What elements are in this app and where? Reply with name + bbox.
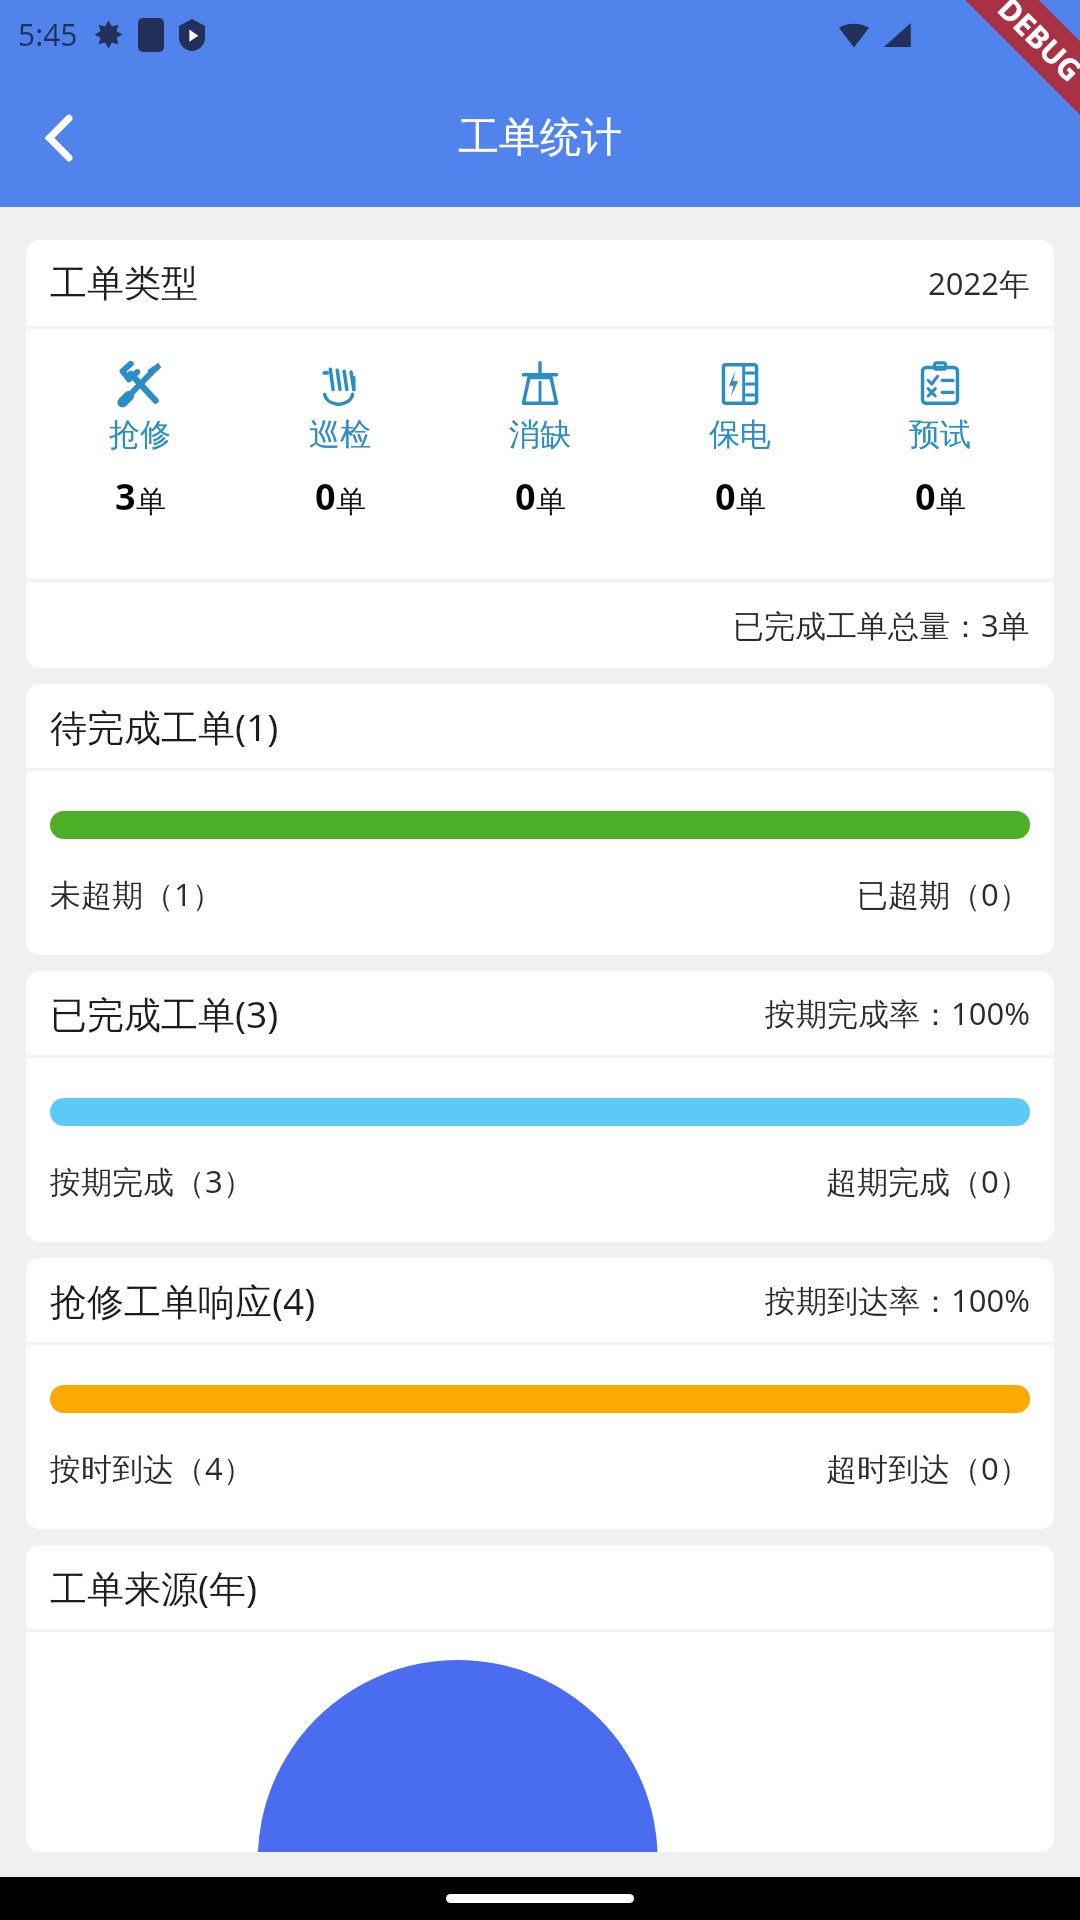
staticText: 0: [515, 472, 536, 521]
staticText: 0: [915, 472, 936, 521]
staticText: 超时到达（0）: [826, 1447, 1030, 1489]
staticText: 3: [115, 472, 136, 521]
staticText: 保电: [709, 415, 771, 454]
staticText: 已完成工单总量：3单: [733, 604, 1030, 646]
button[interactable]: 待完成工单(1): [26, 684, 1054, 955]
button[interactable]: 已完成工单(3): [26, 971, 1054, 1242]
button[interactable]: 工单类型: [26, 240, 1054, 668]
staticText: 待完成工单(1): [50, 701, 279, 752]
staticText: 按期完成（3）: [50, 1160, 254, 1202]
button[interactable]: 消缺: [440, 361, 640, 521]
staticText: 消缺: [509, 415, 571, 454]
staticText: 按期完成率：100%: [765, 992, 1030, 1034]
staticText: 单: [936, 483, 966, 521]
staticText: 单: [536, 483, 566, 521]
staticText: 工单统计: [458, 112, 622, 164]
staticText: 单: [336, 483, 366, 521]
staticText: 工单类型: [50, 260, 198, 307]
staticText: 单: [736, 483, 766, 521]
button[interactable]: 工单来源(年): [26, 1545, 1054, 1852]
button[interactable]: 保电: [640, 361, 840, 521]
staticText: 0: [315, 472, 336, 521]
staticText: 工单来源(年): [50, 1562, 258, 1613]
staticText: 未超期（1）: [50, 873, 223, 915]
staticText: DEBUG: [989, 0, 1080, 91]
staticText: 巡检: [309, 415, 371, 454]
staticText: 已超期（0）: [857, 873, 1030, 915]
staticText: 按时到达（4）: [50, 1447, 254, 1489]
staticText: 已完成工单(3): [50, 988, 279, 1039]
staticText: 抢修工单响应(4): [50, 1275, 316, 1326]
staticText: 按期到达率：100%: [765, 1279, 1030, 1321]
staticText: 0: [715, 472, 736, 521]
staticText: 预试: [909, 415, 971, 454]
staticText: 超期完成（0）: [826, 1160, 1030, 1202]
staticText: 抢修: [109, 415, 171, 454]
button[interactable]: 抢修工单响应(4): [26, 1258, 1054, 1529]
staticText: 2022年: [928, 262, 1030, 304]
button[interactable]: 预试: [840, 361, 1040, 521]
button[interactable]: 巡检: [240, 361, 440, 521]
staticText: 单: [136, 483, 166, 521]
button[interactable]: 抢修: [40, 361, 240, 521]
staticText: 5:45: [18, 14, 78, 55]
button[interactable]: Back: [26, 104, 94, 172]
